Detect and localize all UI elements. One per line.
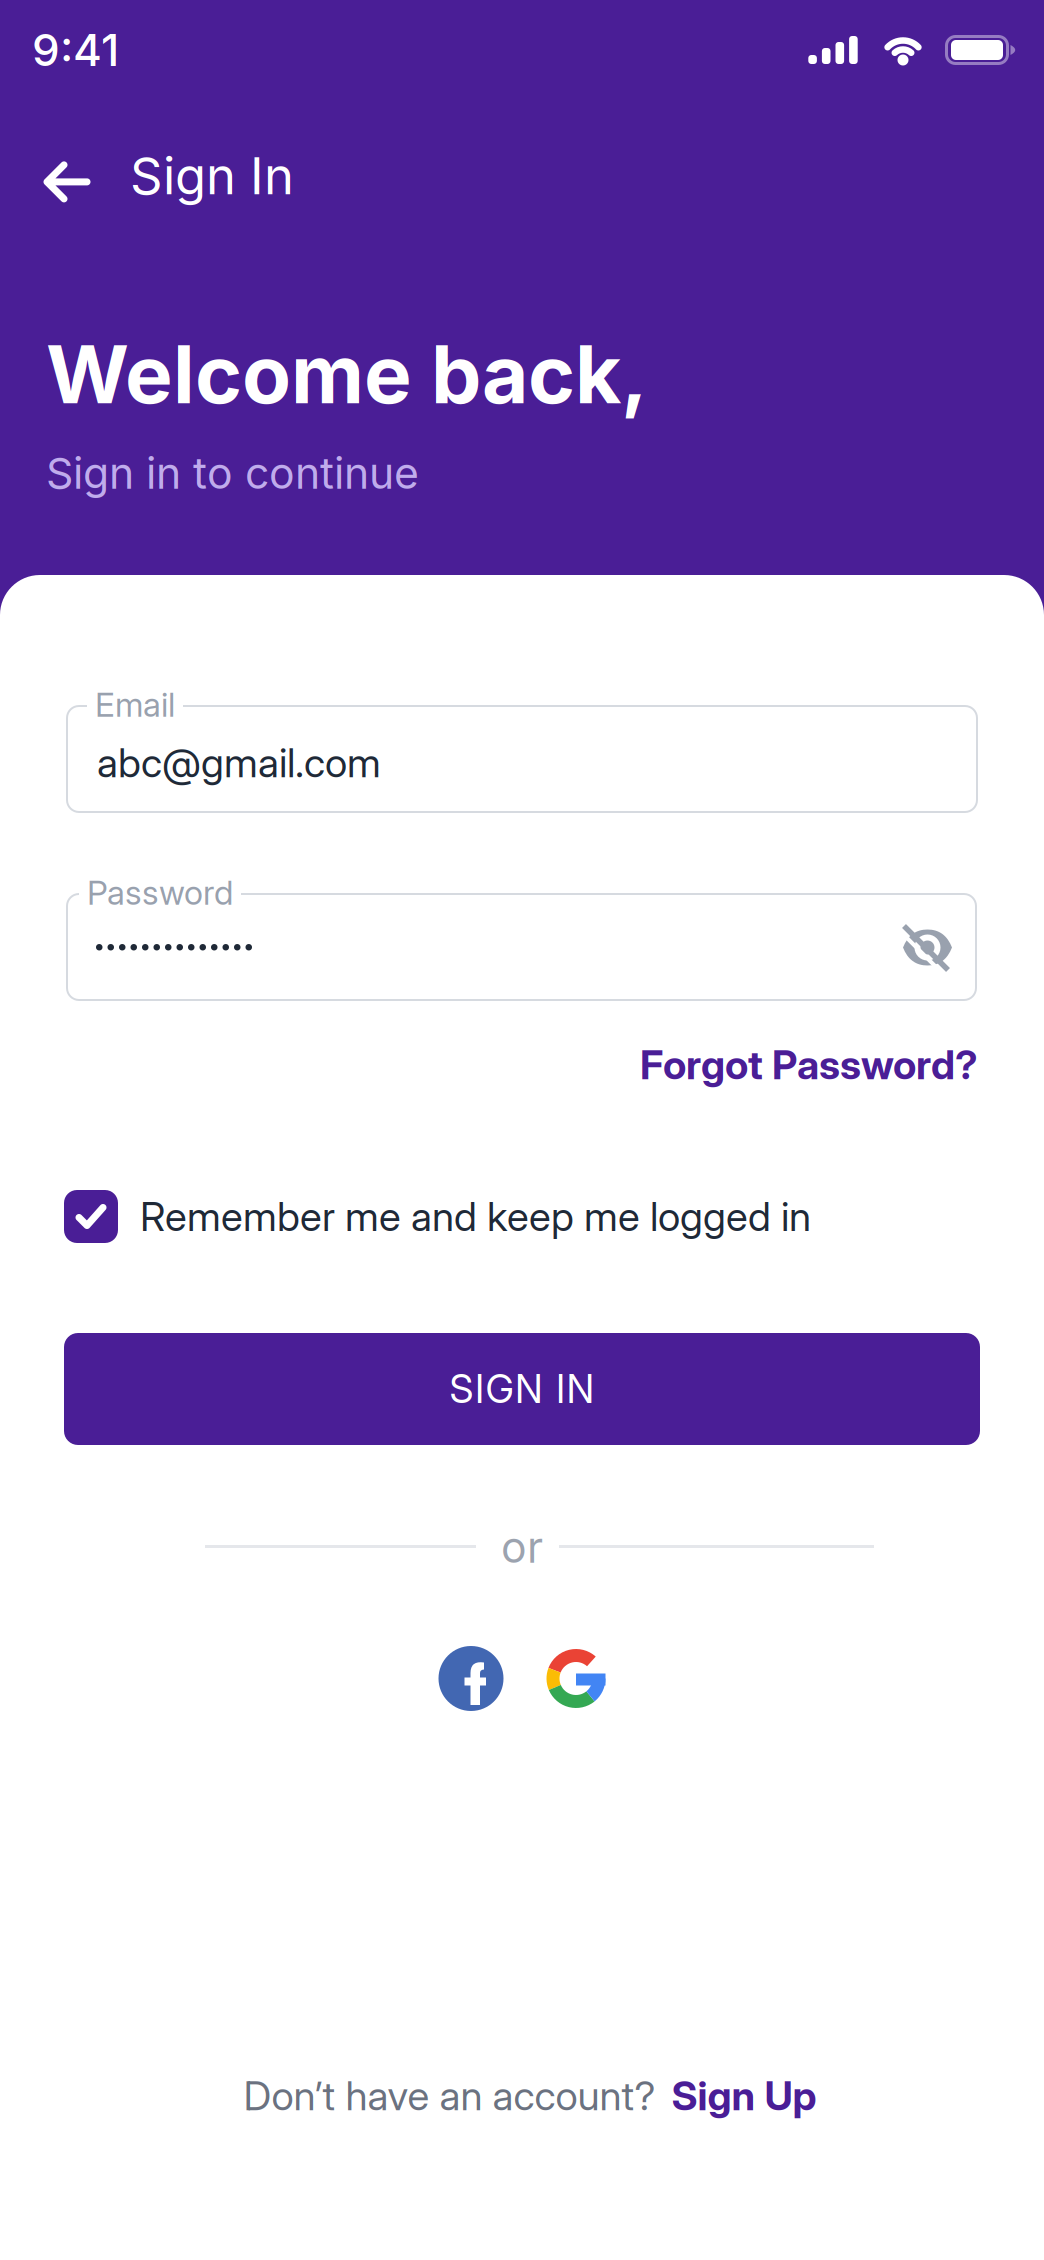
staticText: SIGN IN	[449, 1366, 594, 1412]
staticText: Don’t have an account?	[243, 2072, 655, 2119]
button[interactable]: Email	[66, 705, 978, 813]
staticText: 9:41	[32, 24, 119, 76]
button[interactable]: SIGN IN	[64, 1333, 980, 1445]
button[interactable]: Forgot Password?	[640, 1041, 978, 1088]
button[interactable]: Back	[40, 146, 294, 206]
staticText: Password	[87, 873, 233, 912]
button[interactable]: Password	[66, 893, 977, 1001]
staticText: abc@gmail.com	[97, 739, 381, 786]
staticText: Remember me and keep me logged in	[140, 1193, 811, 1240]
button[interactable]: Sign in with Facebook	[438, 1646, 503, 1711]
staticText: Email	[95, 685, 175, 724]
staticText: Forgot Password?	[640, 1041, 978, 1088]
staticText: or	[501, 1522, 543, 1572]
button[interactable]: Remember me and keep me logged in	[64, 1190, 811, 1243]
staticText: Sign In	[130, 146, 294, 206]
staticText: Sign Up	[671, 2072, 816, 2119]
button[interactable]: Sign Up	[671, 2072, 816, 2119]
button[interactable]: Show password	[903, 927, 952, 968]
staticText: Welcome back,	[46, 327, 648, 421]
button[interactable]: Sign in with Google	[546, 1649, 605, 1708]
staticText: Sign in to continue	[46, 448, 419, 498]
